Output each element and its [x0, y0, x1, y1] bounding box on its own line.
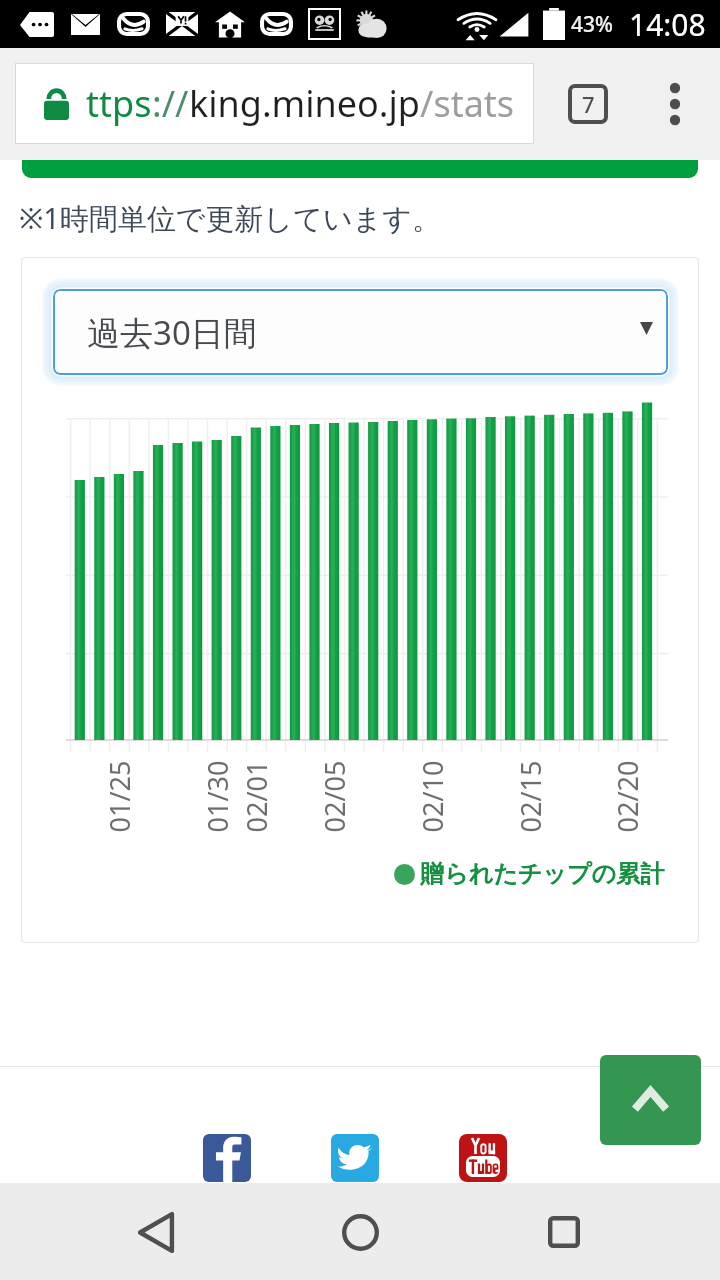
staticText: 02/15: [511, 760, 548, 832]
button[interactable]: 過去30日間: [53, 289, 668, 375]
staticText: 7: [582, 89, 595, 119]
button[interactable]: Twitter: [331, 1134, 379, 1182]
staticText: ://: [152, 79, 189, 128]
staticText: 43%: [571, 10, 613, 39]
staticText: 02/01: [237, 760, 274, 832]
staticText: 02/05: [315, 760, 352, 832]
staticText: 02/10: [413, 760, 450, 832]
button[interactable]: ttps: [15, 63, 534, 144]
button[interactable]: Facebook: [203, 1134, 251, 1182]
staticText: 02/20: [608, 760, 645, 832]
button[interactable]: Back: [108, 1184, 204, 1280]
button[interactable]: More options: [654, 80, 696, 128]
button[interactable]: Back to top: [600, 1055, 701, 1145]
staticText: ttps: [86, 79, 152, 128]
button[interactable]: Recents: [516, 1184, 612, 1280]
staticText: ※1時間単位で更新しています。: [19, 198, 441, 238]
staticText: 贈られたチップの累計: [420, 859, 664, 889]
staticText: 過去30日間: [87, 310, 257, 355]
staticText: king.mineo.jp: [189, 79, 420, 128]
staticText: 01/25: [100, 760, 137, 832]
button[interactable]: Home: [312, 1184, 408, 1280]
staticText: 14:08: [629, 4, 706, 45]
staticText: /stats: [420, 79, 515, 128]
staticText: 01/30: [198, 760, 235, 832]
button[interactable]: YouTube: [459, 1134, 507, 1182]
button[interactable]: Tabs: [570, 86, 606, 122]
